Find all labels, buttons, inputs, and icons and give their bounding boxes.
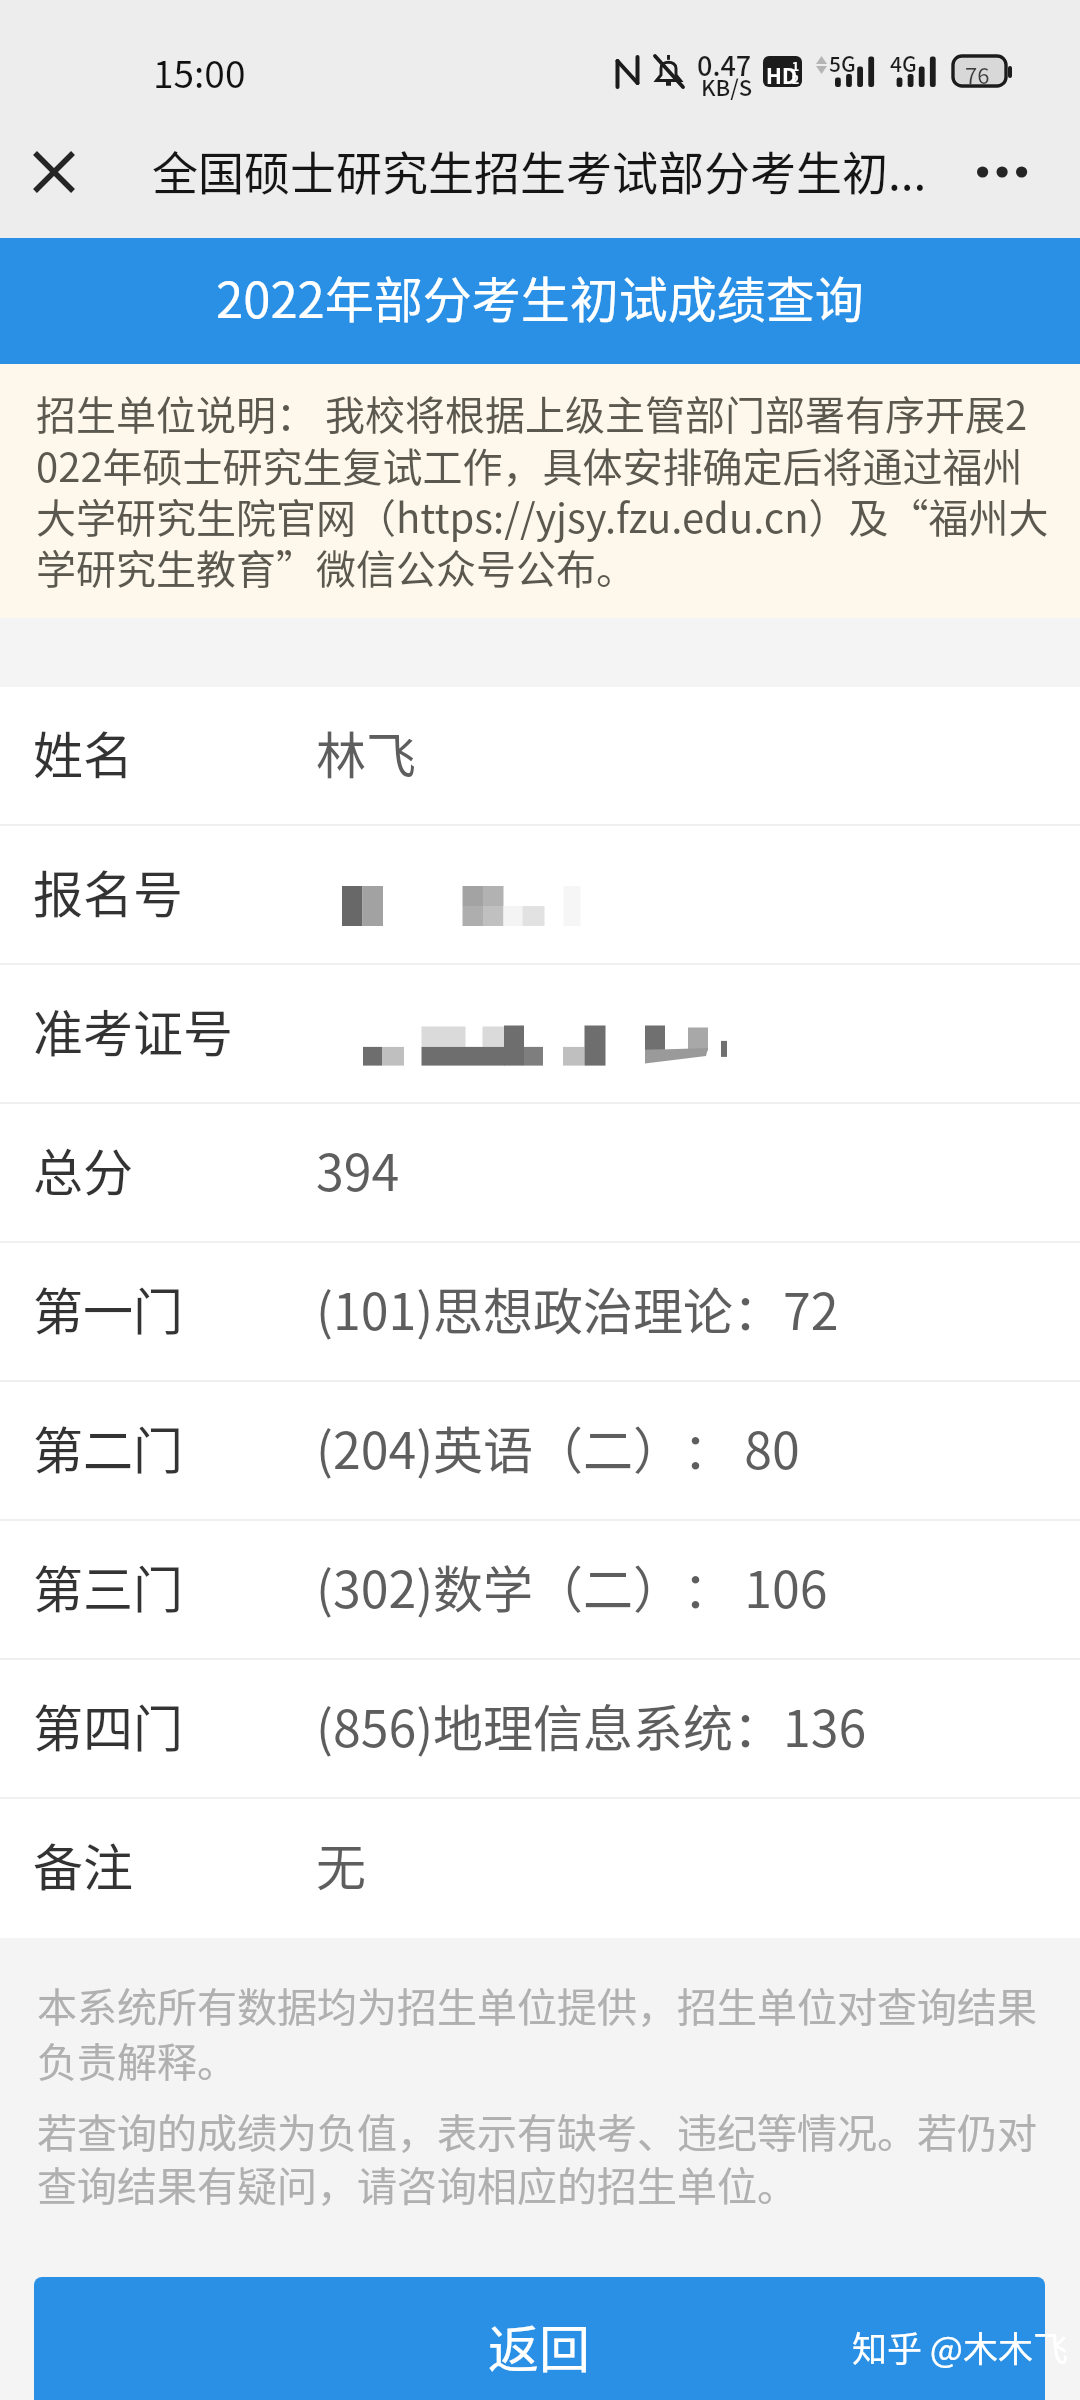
button[interactable]: 总分	[0, 1104, 1080, 1243]
staticText: KB/S	[701, 70, 753, 102]
button[interactable]: Close	[14, 105, 94, 238]
staticText: 4G	[890, 48, 917, 78]
staticText: 2	[792, 70, 800, 87]
staticText: 第二门	[33, 1411, 183, 1483]
button[interactable]: 第四门	[0, 1660, 1080, 1799]
staticText: 15:00	[153, 45, 246, 99]
staticText: 5G	[829, 48, 856, 78]
staticText: 知乎 @木木飞	[852, 2321, 1068, 2372]
staticText: 第一门	[33, 1272, 183, 1344]
staticText: 总分	[33, 1133, 133, 1205]
button[interactable]: 报名号	[0, 826, 1080, 965]
staticText: 招生单位说明： 我校将根据上级主管部门部署有序开展2 022年硕士研究生复试工作…	[36, 384, 1049, 595]
button[interactable]: 姓名	[0, 687, 1080, 826]
staticText: 姓名	[33, 716, 133, 788]
staticText: (101)思想政治理论：72	[316, 1272, 839, 1344]
button[interactable]: More options	[960, 105, 1050, 238]
staticText: 准考证号	[33, 994, 233, 1066]
staticText: 0.47	[697, 45, 752, 84]
staticText: 2022年部分考生初试成绩查询	[216, 261, 864, 332]
staticText: 返回	[488, 2309, 591, 2383]
staticText: 备注	[33, 1828, 133, 1900]
button[interactable]: 备注	[0, 1799, 1080, 1938]
staticText: 76	[965, 58, 990, 90]
staticText: 林飞	[316, 716, 416, 788]
button[interactable]: 第一门	[0, 1243, 1080, 1382]
button[interactable]: 返回	[34, 2277, 1045, 2400]
staticText: 全国硕士研究生招生考试部分考生初...	[152, 137, 927, 204]
staticText: HD	[766, 60, 797, 90]
button[interactable]: 准考证号	[0, 965, 1080, 1104]
staticText: 本系统所有数据均为招生单位提供，招生单位对查询结果负责解释。	[37, 1976, 1047, 2089]
button[interactable]: 第二门	[0, 1382, 1080, 1521]
staticText: 若查询的成绩为负值，表示有缺考、违纪等情况。若仍对查询结果有疑问，请咨询相应的招…	[37, 2102, 1047, 2213]
staticText: 报名号	[33, 855, 183, 927]
staticText: (856)地理信息系统：136	[316, 1689, 867, 1761]
staticText: 无	[316, 1828, 366, 1900]
staticText: 394	[316, 1133, 400, 1205]
staticText: 第四门	[33, 1689, 183, 1761]
staticText: (204)英语（二）： 80	[316, 1411, 800, 1483]
button[interactable]: 第三门	[0, 1521, 1080, 1660]
staticText: 第三门	[33, 1550, 183, 1622]
staticText: (302)数学（二）： 106	[316, 1550, 828, 1622]
staticText: 1	[792, 57, 800, 74]
